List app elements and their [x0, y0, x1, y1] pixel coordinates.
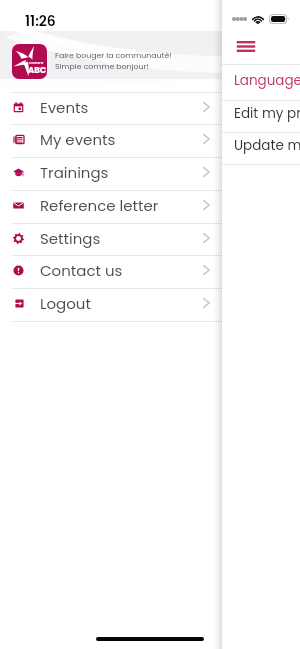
staticText: Trainings: [40, 162, 109, 183]
staticText: Update my password: [234, 136, 300, 155]
staticText: Logout: [40, 293, 91, 314]
button[interactable]: Trainings: [0, 156, 222, 188]
staticText: Events: [40, 97, 89, 118]
button[interactable]: Logout: [0, 287, 222, 319]
staticText: Faire bouger la communauté!: [55, 50, 172, 61]
staticText: Reference letter: [40, 195, 159, 216]
staticText: Simple comme bonjour!: [55, 61, 149, 72]
button[interactable]: Update my password: [222, 133, 300, 158]
button[interactable]: Open navigation menu: [234, 35, 258, 57]
button[interactable]: Reference letter: [0, 189, 222, 221]
staticText: Contact us: [40, 260, 123, 281]
staticText: 11:26: [25, 11, 56, 31]
button[interactable]: Events: [0, 91, 222, 123]
button[interactable]: Settings: [0, 222, 222, 254]
staticText: Language: [234, 71, 300, 90]
button[interactable]: My events: [0, 123, 222, 155]
button[interactable]: Language: [222, 65, 300, 95]
staticText: Edit my profile: [234, 104, 300, 123]
staticText: Centre: [29, 60, 44, 66]
button[interactable]: Edit my profile: [222, 101, 300, 126]
staticText: Settings: [40, 228, 101, 249]
button[interactable]: Contact us: [0, 254, 222, 286]
staticText: ABC: [28, 64, 47, 76]
staticText: My events: [40, 129, 116, 150]
